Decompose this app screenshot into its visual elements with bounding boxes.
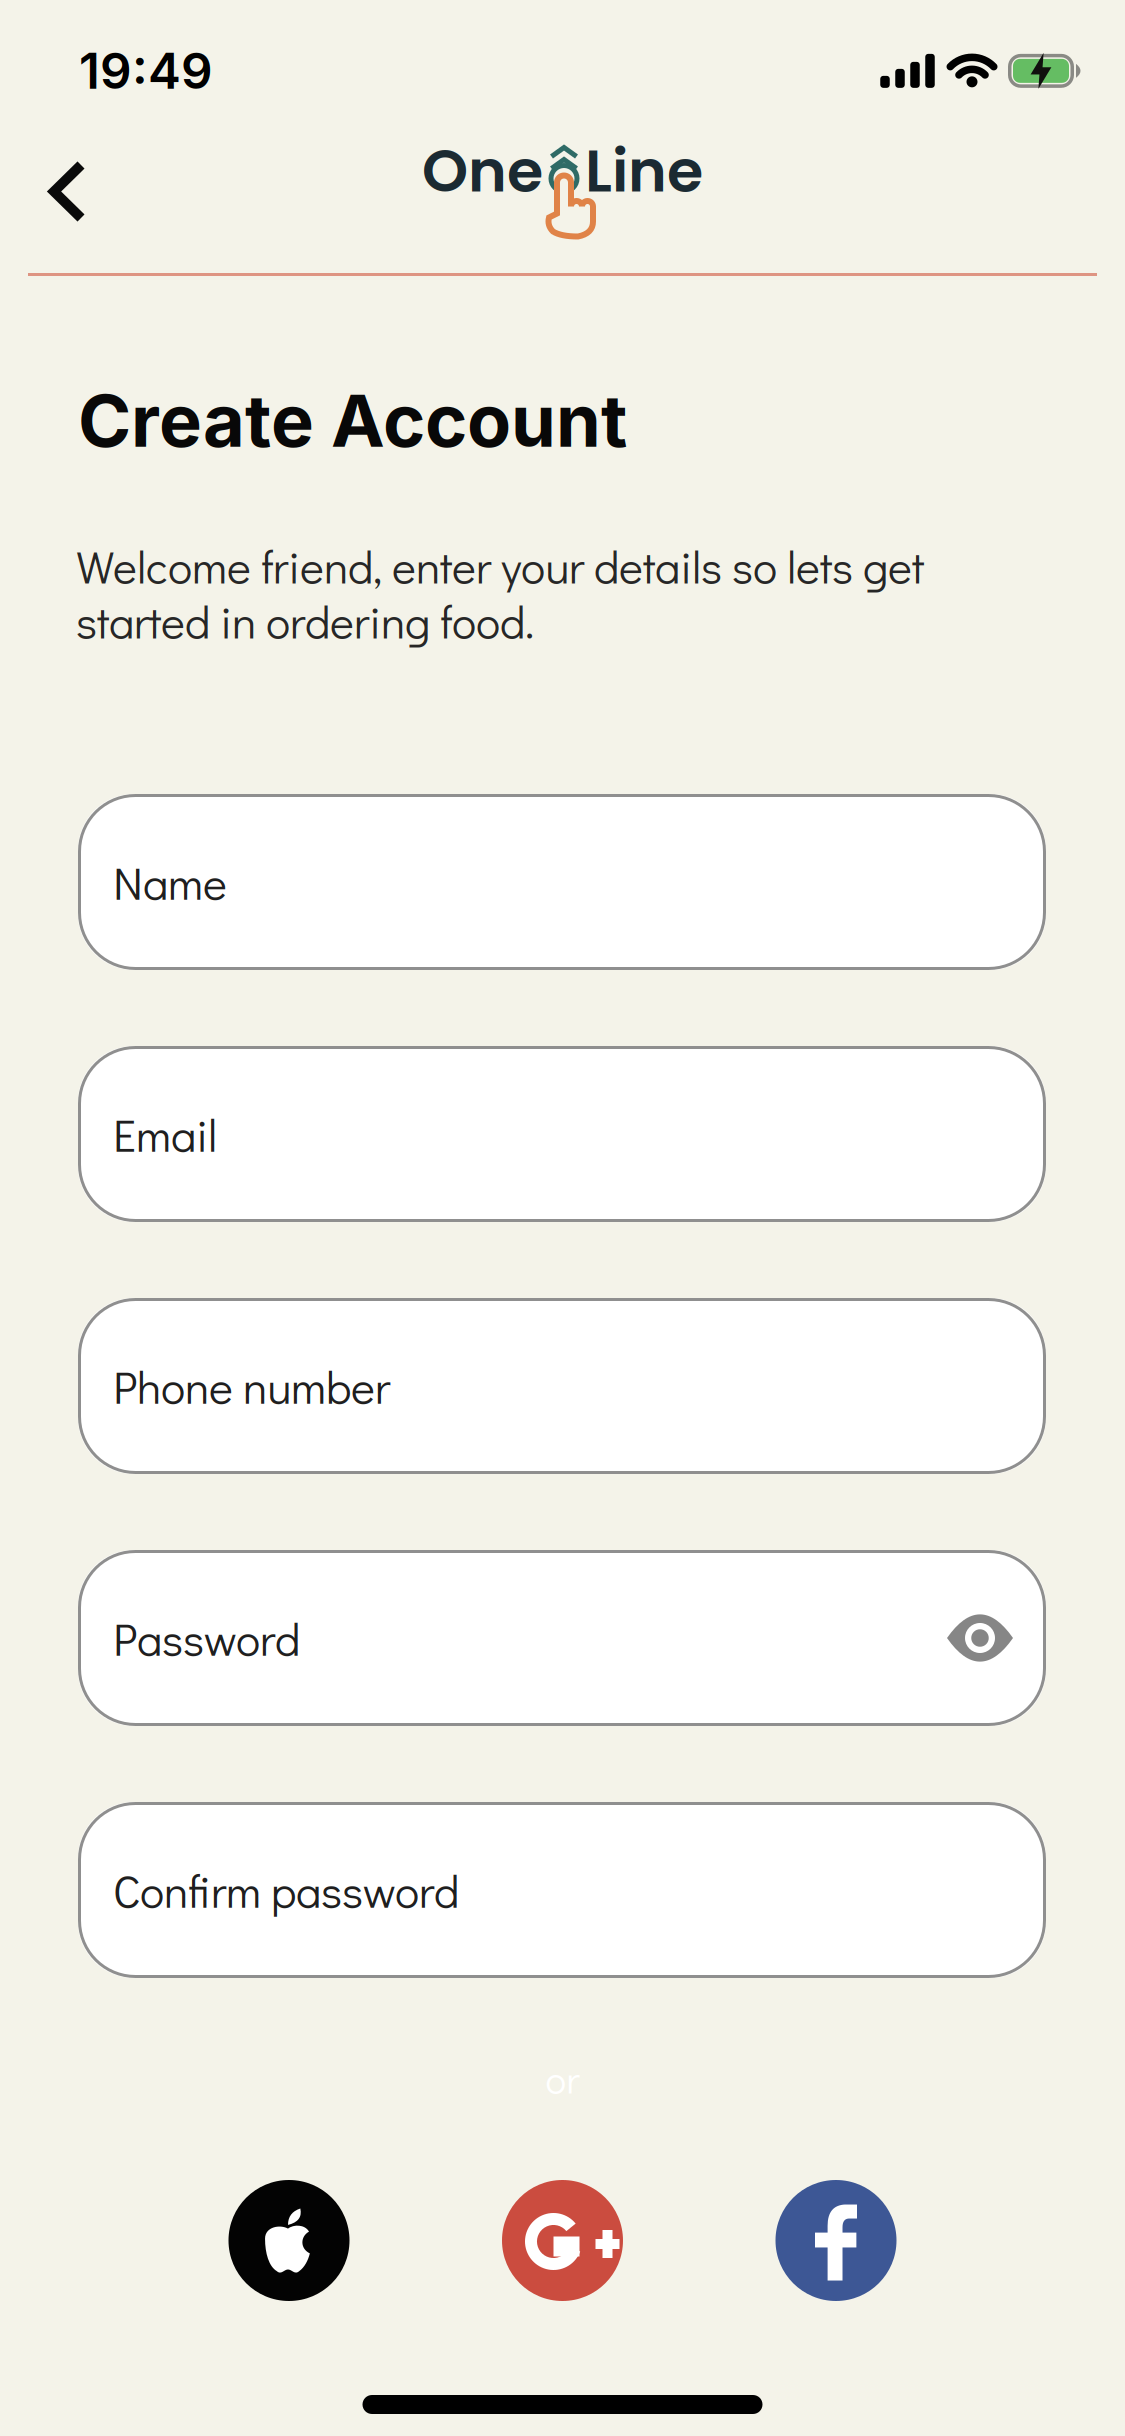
button[interactable]: Continue with Apple — [228, 2180, 349, 2301]
button[interactable]: Name — [78, 794, 1046, 970]
staticText: Password — [113, 1608, 300, 1668]
staticText: Confirm password — [113, 1860, 459, 1920]
staticText: Phone number — [113, 1356, 390, 1416]
button[interactable]: Continue with Facebook — [775, 2180, 896, 2301]
staticText: 19:49 — [79, 41, 213, 101]
staticText: Name — [113, 852, 227, 912]
button[interactable]: Email — [78, 1046, 1046, 1222]
button[interactable]: Password — [78, 1550, 1046, 1726]
staticText: or — [545, 2053, 579, 2104]
staticText: One — [422, 130, 543, 212]
button[interactable]: Back — [0, 0, 81, 218]
staticText: Welcome friend, enter your details so le… — [76, 536, 924, 595]
button[interactable]: Phone number — [78, 1298, 1046, 1474]
button[interactable]: Confirm password — [78, 1802, 1046, 1978]
staticText: Email — [113, 1104, 217, 1164]
button[interactable]: Continue with Google — [502, 2180, 623, 2301]
staticText: started in ordering food. — [76, 591, 534, 650]
staticText: Create Account — [78, 377, 627, 464]
staticText: Line — [585, 130, 703, 212]
